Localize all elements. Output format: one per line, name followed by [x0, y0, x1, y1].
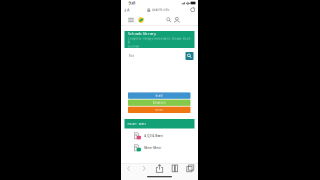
button[interactable]: Reset	[128, 107, 190, 113]
staticText: Reset	[155, 108, 163, 111]
staticText: RECENT TASKS	[127, 122, 145, 125]
button[interactable]: Account	[173, 15, 181, 25]
staticText: Title	[128, 54, 134, 58]
staticText: Search	[155, 94, 163, 97]
staticText: Schools library	[128, 31, 156, 36]
staticText: A,Q,E & Eleven	[144, 134, 163, 138]
staticText: Complete library environment. Browse Boo…	[128, 37, 190, 44]
button[interactable]: Page settings	[124, 6, 137, 13]
button[interactable]: Tabs	[183, 163, 198, 173]
button[interactable]: Bookmarks	[167, 163, 183, 173]
staticText: A	[124, 9, 126, 12]
staticText: Mirror Mirror	[144, 146, 161, 150]
button[interactable]: Forward	[136, 163, 152, 173]
button[interactable]: Menu	[125, 15, 136, 25]
button[interactable]: Advanced	[128, 99, 190, 106]
button[interactable]: Mirror Mirror	[121, 142, 198, 154]
button[interactable]: Back	[121, 163, 136, 173]
staticText: opac.lib.edu	[151, 8, 169, 11]
staticText: Advanced	[153, 101, 166, 104]
button[interactable]: Reload	[182, 6, 195, 13]
button[interactable]: A,Q,E & Eleven	[121, 130, 198, 142]
button[interactable]: Search site	[165, 15, 173, 25]
button[interactable]: Search	[128, 92, 190, 99]
staticText: Journals	[128, 45, 139, 48]
staticText: A	[127, 7, 130, 12]
button[interactable]: Search	[185, 52, 193, 60]
button[interactable]: Share	[152, 163, 167, 173]
staticText: 9:41	[128, 0, 135, 6]
